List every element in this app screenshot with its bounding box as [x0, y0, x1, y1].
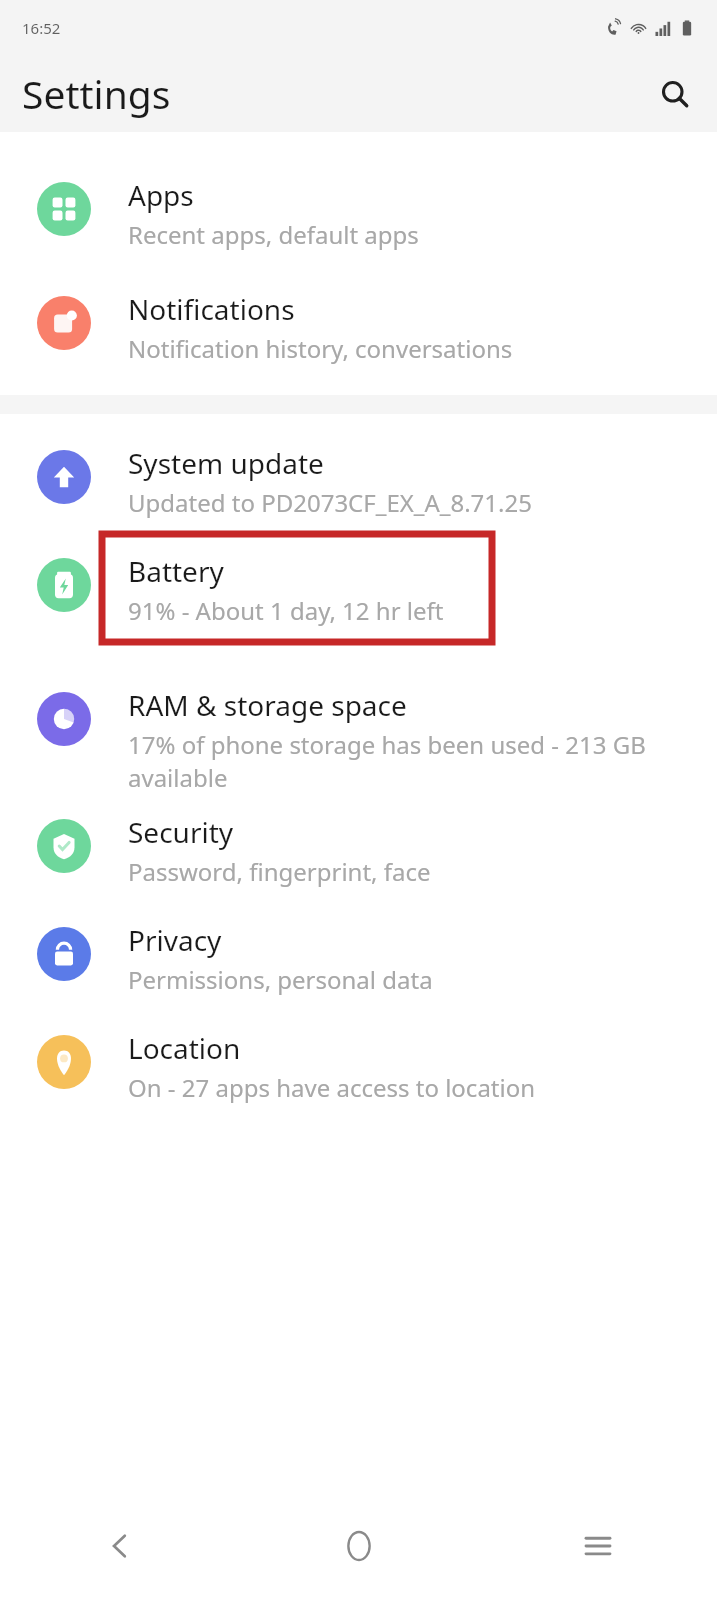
button[interactable]: Apps: [0, 176, 717, 251]
staticText: Privacy: [128, 921, 222, 959]
button[interactable]: Battery: [0, 552, 717, 660]
staticText: Recent apps, default apps: [128, 218, 419, 251]
staticText: Security: [128, 813, 234, 851]
button[interactable]: Location: [0, 1029, 717, 1104]
button[interactable]: Recent apps: [478, 1506, 717, 1586]
staticText: 17% of phone storage has been used - 213…: [128, 728, 693, 794]
button[interactable]: Security: [0, 813, 717, 888]
button[interactable]: Back: [0, 1506, 239, 1586]
staticText: Settings: [22, 67, 171, 120]
staticText: Apps: [128, 176, 194, 214]
button[interactable]: RAM & storage space: [0, 686, 717, 794]
staticText: Notifications: [128, 290, 295, 328]
button[interactable]: Home: [239, 1506, 478, 1586]
staticText: RAM & storage space: [128, 686, 407, 724]
staticText: 91% - About 1 day, 12 hr left: [128, 594, 444, 627]
staticText: System update: [128, 444, 324, 482]
button[interactable]: System update: [0, 444, 717, 519]
staticText: On - 27 apps have access to location: [128, 1071, 536, 1104]
staticText: Battery: [128, 552, 224, 590]
button[interactable]: Notifications: [0, 290, 717, 365]
staticText: 16:52: [22, 18, 61, 38]
staticText: Permissions, personal data: [128, 963, 433, 996]
staticText: Notification history, conversations: [128, 332, 513, 365]
button[interactable]: Privacy: [0, 921, 717, 996]
staticText: Location: [128, 1029, 241, 1067]
staticText: Password, fingerprint, face: [128, 855, 431, 888]
staticText: Updated to PD2073CF_EX_A_8.71.25: [128, 486, 532, 519]
button[interactable]: Search: [647, 66, 703, 122]
